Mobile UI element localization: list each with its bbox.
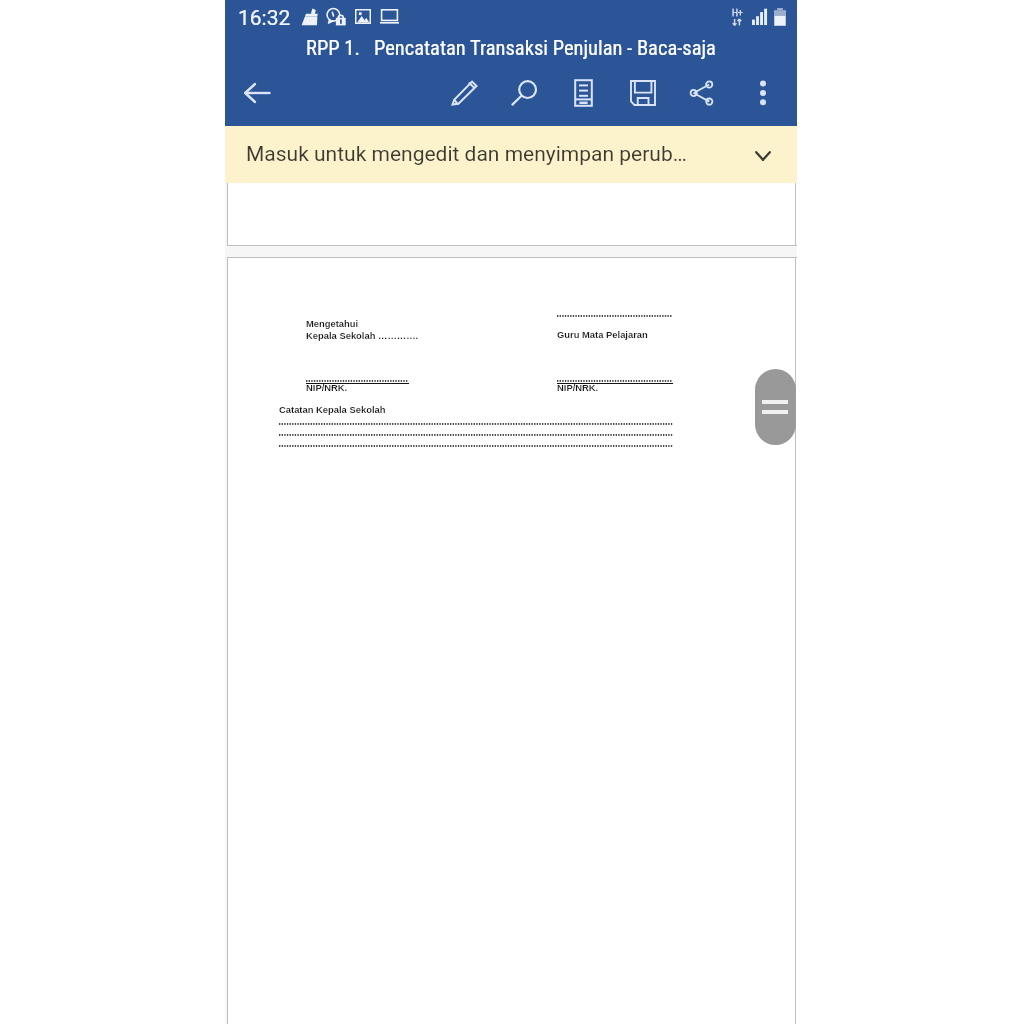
staticText: Kepala Sekolah ………….	[306, 330, 419, 341]
button[interactable]: Expand	[743, 136, 783, 176]
button[interactable]: More options	[735, 65, 791, 121]
staticText: NIP/NRK.	[557, 382, 599, 393]
staticText: Mengetahui	[306, 318, 359, 329]
button[interactable]: Share	[674, 65, 730, 121]
staticText: Catatan Kepala Sekolah	[279, 404, 386, 415]
button[interactable]: Edit	[436, 65, 492, 121]
button[interactable]: Masuk untuk mengedit dan menyimpan perub…	[225, 126, 797, 183]
staticText: NIP/NRK.	[306, 382, 348, 393]
staticText: 16:32	[238, 6, 291, 31]
staticText: RPP 1. Pencatatan Transaksi Penjulan - B…	[306, 36, 716, 60]
staticText: Masuk untuk mengedit dan menyimpan perub…	[246, 142, 687, 167]
button[interactable]: Navigate up	[229, 65, 285, 121]
button[interactable]: Search	[499, 65, 555, 121]
button[interactable]: Mobile view	[555, 65, 611, 121]
staticText: Guru Mata Pelajaran	[557, 329, 648, 340]
button[interactable]: Drag to scroll	[755, 369, 796, 445]
button[interactable]: Save	[615, 65, 671, 121]
staticText: H+	[732, 8, 743, 18]
